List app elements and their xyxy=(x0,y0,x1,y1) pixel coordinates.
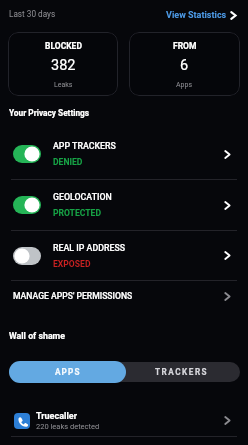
staticText: Last 30 days xyxy=(9,9,56,19)
staticText: BLOCKED xyxy=(45,41,82,51)
staticText: Apps xyxy=(176,81,193,89)
button[interactable]: TRACKERS xyxy=(124,362,240,382)
staticText: MANAGE APPS' PERMISSIONS xyxy=(13,291,133,301)
staticText: 220 leaks detected xyxy=(36,422,100,431)
staticText: Leaks xyxy=(54,81,73,89)
staticText: View Statistics xyxy=(166,10,227,21)
button[interactable]: REAL IP ADDRESS xyxy=(0,231,248,280)
button[interactable]: BLOCKED xyxy=(8,32,118,96)
staticText: APPS xyxy=(55,367,81,377)
staticText: PROTECTED xyxy=(53,208,102,218)
button[interactable]: FROM xyxy=(129,32,240,96)
staticText: GEOLOCATION xyxy=(53,192,112,202)
staticText: 6 xyxy=(180,57,189,74)
staticText: 382 xyxy=(51,57,76,74)
button[interactable]: View Statistics xyxy=(166,10,237,21)
button[interactable]: MANAGE APPS' PERMISSIONS xyxy=(0,281,248,311)
button[interactable]: APPS xyxy=(9,361,126,383)
staticText: Wall of shame xyxy=(9,331,65,341)
staticText: APP TRACKERS xyxy=(53,141,116,151)
staticText: Truecaller xyxy=(36,411,77,422)
staticText: REAL IP ADDRESS xyxy=(53,243,126,253)
button[interactable]: Truecaller xyxy=(0,404,248,437)
button[interactable]: APP TRACKERS xyxy=(0,129,248,179)
staticText: TRACKERS xyxy=(155,367,209,377)
staticText: FROM xyxy=(173,41,197,51)
staticText: DENIED xyxy=(53,157,83,167)
button[interactable]: GEOLOCATION xyxy=(0,180,248,230)
staticText: EXPOSED xyxy=(53,259,91,269)
staticText: Your Privacy Settings xyxy=(9,108,90,118)
